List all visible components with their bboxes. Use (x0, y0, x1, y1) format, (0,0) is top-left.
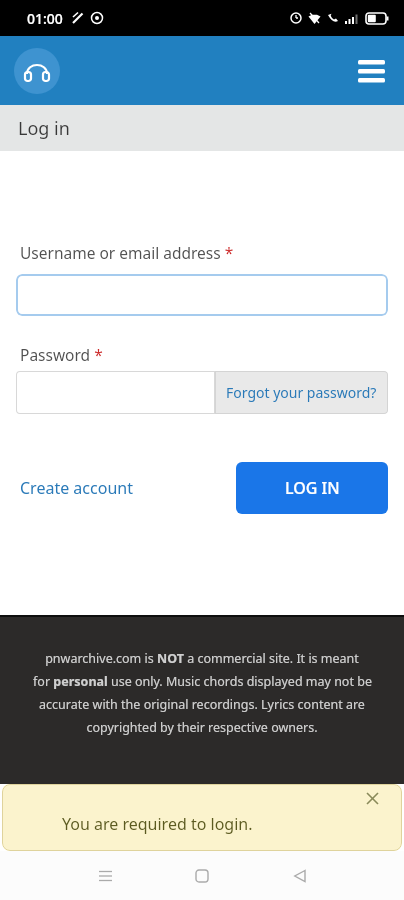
staticText: Username or email address * (20, 242, 234, 263)
button[interactable] (279, 856, 319, 896)
button[interactable] (16, 371, 215, 414)
staticText: Log in (18, 116, 70, 141)
staticText: LOG IN (285, 477, 340, 499)
button[interactable]: Create account (20, 477, 133, 499)
button[interactable] (354, 54, 388, 88)
staticText: accurate with the original recordings. L… (39, 696, 365, 713)
staticText: copyrighted by their respective owners. (86, 719, 318, 736)
staticText: for personal use only. Music chords disp… (33, 673, 372, 690)
button[interactable] (14, 48, 60, 94)
button[interactable]: Forgot your password? (215, 371, 388, 414)
staticText: Password * (20, 344, 103, 365)
button[interactable] (85, 856, 125, 896)
button[interactable] (16, 274, 388, 316)
staticText: 01:00 (27, 9, 63, 28)
button[interactable]: LOG IN (236, 462, 388, 514)
staticText: Forgot your password? (226, 383, 377, 402)
staticText: You are required to login. (62, 813, 253, 835)
button[interactable] (182, 856, 222, 896)
button[interactable]: You are required to login. (2, 784, 402, 851)
staticText: pnwarchive.com is NOT a commercial site.… (45, 650, 359, 667)
